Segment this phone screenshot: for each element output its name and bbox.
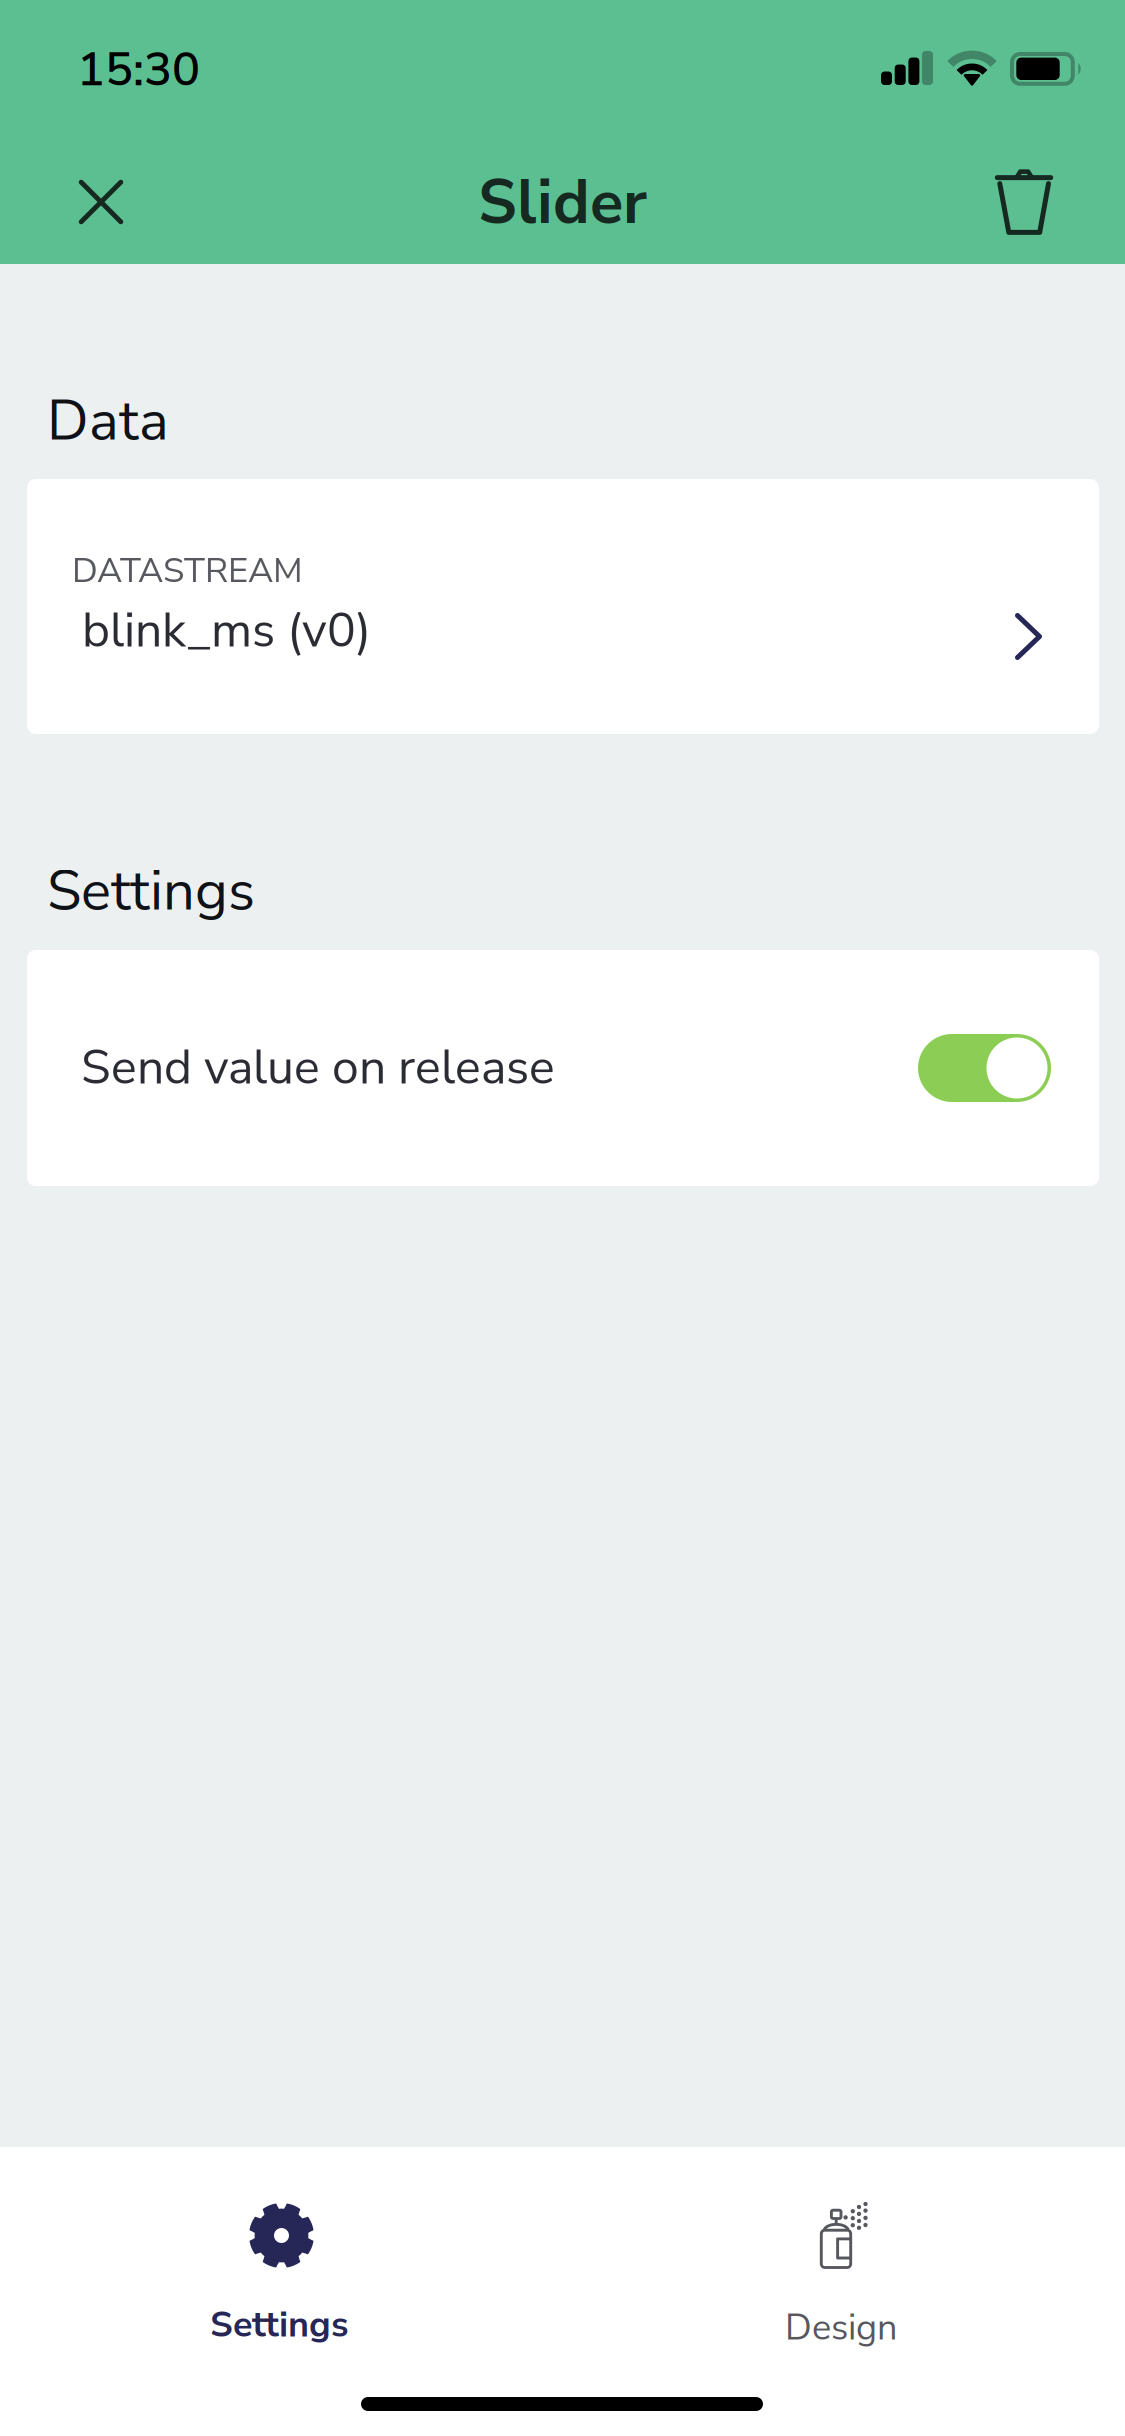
staticText: Design	[785, 2303, 897, 2352]
button[interactable]: Settings	[0, 2147, 562, 2350]
button[interactable]: DATASTREAM	[27, 479, 1099, 734]
staticText: blink_ms (v0)	[82, 598, 371, 663]
staticText: Settings	[210, 2300, 349, 2349]
staticText: Slider	[478, 161, 647, 245]
staticText: DATASTREAM	[72, 547, 303, 594]
button[interactable]: Send value on release	[27, 950, 1099, 1186]
button[interactable]: Design	[562, 2147, 1125, 2350]
staticText: Send value on release	[81, 1035, 555, 1100]
staticText: 15:30	[77, 38, 200, 102]
staticText: Data	[47, 383, 169, 459]
button[interactable]: Delete	[968, 146, 1080, 258]
button[interactable]: Close	[45, 146, 157, 258]
staticText: Settings	[47, 853, 255, 929]
